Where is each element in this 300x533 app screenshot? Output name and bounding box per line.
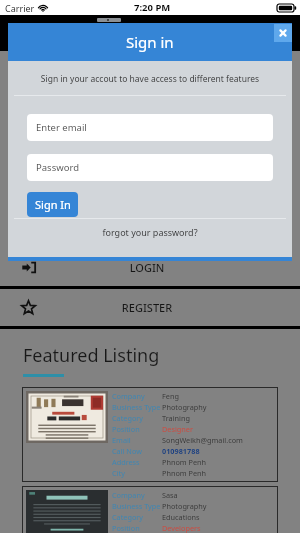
staticText: Developers [162, 523, 201, 533]
button[interactable]: Company [22, 387, 278, 482]
staticText: SongWeikh@gmail.com [162, 435, 243, 445]
staticText: Designer [162, 424, 193, 434]
staticText: Educations [162, 512, 200, 522]
staticText: Password [36, 161, 79, 174]
staticText: Photography [162, 501, 207, 511]
staticText: 010981788 [162, 446, 200, 456]
staticText: Phnom Penh [162, 457, 207, 467]
button[interactable]: REGISTER [0, 289, 300, 326]
button[interactable]: Enter email [27, 114, 273, 141]
staticText: LOGIN [0, 260, 297, 275]
staticText: 7:20 PM [134, 1, 171, 14]
staticText: Sign in [126, 32, 174, 52]
staticText: Address [112, 457, 162, 467]
button[interactable]: Company [22, 486, 278, 533]
button[interactable]: Password [27, 154, 273, 181]
button[interactable]: LOGIN [0, 250, 300, 285]
staticText: Category [112, 512, 162, 522]
button[interactable]: forgot your password? [8, 226, 292, 238]
button[interactable]: Sign In [27, 192, 78, 217]
staticText: Sasa [162, 490, 178, 500]
staticText: Photography [162, 402, 207, 412]
staticText: Phnom Penh [162, 468, 207, 478]
staticText: Email [112, 435, 162, 445]
staticText: Sign In [35, 197, 71, 212]
staticText: Position [112, 424, 162, 434]
staticText: Training [162, 413, 190, 423]
staticText: City [112, 468, 162, 478]
staticText: Featured Listing [23, 343, 160, 368]
staticText: Feng [162, 391, 179, 401]
staticText: Business Type [112, 501, 162, 511]
staticText: Sign in your accout to have access to di… [8, 73, 292, 85]
staticText: Position [112, 523, 162, 533]
staticText: REGISTER [0, 300, 297, 315]
staticText: Company [112, 391, 162, 401]
staticText: Carrier [5, 2, 35, 14]
staticText: Company [112, 490, 162, 500]
staticText: Business Type [112, 402, 162, 412]
button[interactable]: Close [274, 24, 292, 42]
staticText: Call Now [112, 446, 162, 456]
staticText: Enter email [36, 121, 87, 134]
staticText: Category [112, 413, 162, 423]
